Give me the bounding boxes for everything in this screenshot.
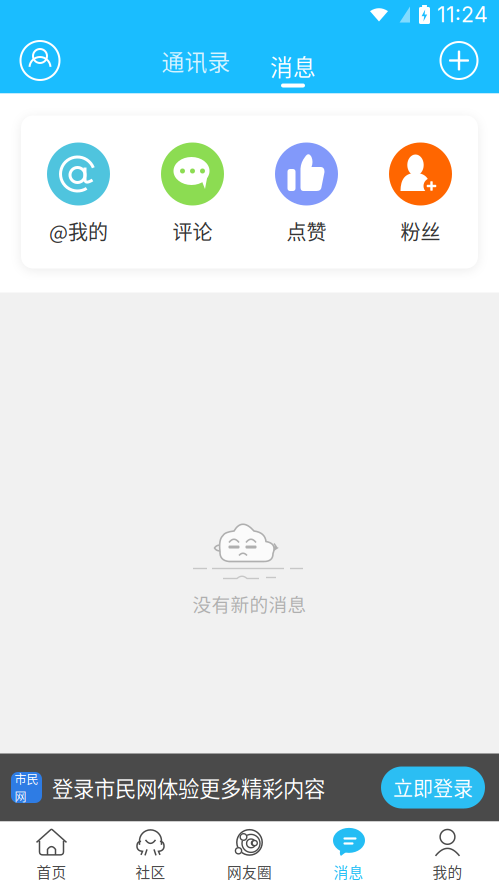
button[interactable]: 点赞 [249,115,363,268]
button[interactable]: 立即登录 [381,766,485,808]
button[interactable]: 首页 [2,821,101,887]
staticText: 网友圈 [227,861,272,882]
staticText: 市民网 [14,770,38,805]
button[interactable]: 消息 [299,821,398,887]
staticText: 粉丝 [400,216,440,245]
button[interactable]: Profile [9,28,71,92]
staticText: 首页 [36,861,66,882]
staticText: 没有新的消息 [192,590,306,617]
staticText: 通讯录 [161,44,230,77]
button[interactable]: 社区 [101,821,200,887]
button[interactable]: 网友圈 [200,821,299,887]
staticText: 我的 [432,861,462,882]
button[interactable]: @我的 [21,115,135,268]
staticText: 消息 [270,49,316,82]
staticText: 立即登录 [393,773,473,802]
button[interactable]: 我的 [398,821,497,887]
button[interactable]: 粉丝 [363,115,477,268]
staticText: 评论 [172,216,212,245]
button[interactable]: Add [428,28,490,92]
staticText: @我的 [49,216,108,245]
staticText: 点赞 [286,216,326,245]
button[interactable]: 评论 [135,115,249,268]
staticText: 社区 [135,861,165,882]
staticText: 11:24 [437,2,488,27]
staticText: 消息 [333,861,363,882]
staticText: 登录市民网体验更多精彩内容 [52,772,325,803]
button[interactable]: 通讯录 [156,28,236,92]
button[interactable]: 消息 [270,28,316,92]
